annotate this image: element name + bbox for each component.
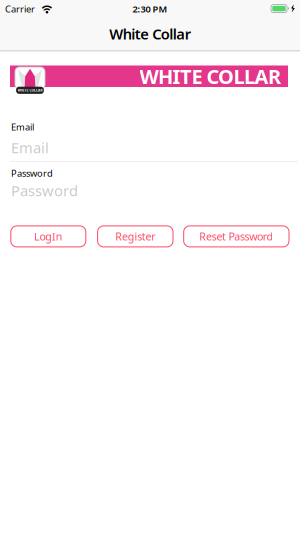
staticText: LogIn xyxy=(34,229,63,243)
staticText: Email xyxy=(11,138,49,157)
staticText: Password xyxy=(11,181,78,200)
button[interactable]: Register xyxy=(98,226,173,247)
staticText: Password xyxy=(11,167,53,179)
staticText: WHITE COLLAR xyxy=(139,63,281,90)
staticText: Reset Password xyxy=(199,229,273,243)
staticText: WHITE COLLAR xyxy=(5,86,55,95)
button[interactable]: LogIn xyxy=(11,226,86,247)
staticText: White Collar xyxy=(109,24,191,43)
staticText: Email xyxy=(11,121,34,133)
button[interactable]: Reset Password xyxy=(184,226,289,247)
staticText: 2:30 PM xyxy=(132,3,167,15)
staticText: Register xyxy=(115,229,155,243)
staticText: Carrier xyxy=(5,3,35,15)
